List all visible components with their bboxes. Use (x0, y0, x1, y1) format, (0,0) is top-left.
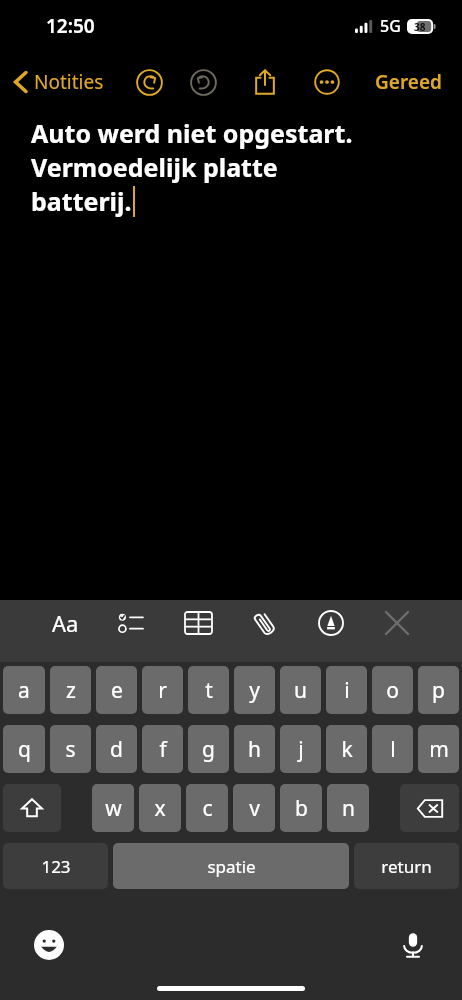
staticText: u (294, 676, 307, 705)
staticText: spatie (207, 855, 256, 878)
button[interactable]: s (50, 725, 91, 773)
staticText: f (159, 735, 167, 764)
staticText: Aa (52, 608, 79, 638)
button[interactable]: f (142, 725, 183, 773)
button[interactable]: q (3, 725, 45, 773)
button[interactable]: i (326, 666, 367, 714)
staticText: o (386, 676, 399, 705)
staticText: w (105, 794, 122, 823)
staticText: Auto werd niet opgestart. (31, 116, 353, 150)
button[interactable]: u (280, 666, 321, 714)
staticText: m (429, 735, 449, 764)
button[interactable]: a (3, 666, 45, 714)
button[interactable]: d (96, 725, 137, 773)
staticText: i (344, 676, 350, 705)
staticText: j (298, 735, 304, 764)
staticText: d (110, 735, 123, 764)
button[interactable]: z (50, 666, 91, 714)
staticText: h (248, 735, 261, 764)
button[interactable]: Text format (42, 600, 88, 646)
button[interactable]: o (372, 666, 413, 714)
button[interactable]: x (139, 784, 181, 832)
staticText: g (202, 735, 215, 764)
button[interactable]: Notities (10, 63, 108, 101)
button[interactable]: v (233, 784, 275, 832)
button[interactable]: Emoji keyboard (26, 922, 72, 968)
button[interactable]: Redo (181, 60, 225, 104)
staticText: s (65, 735, 76, 764)
staticText: 5G (380, 15, 401, 37)
staticText: c (202, 794, 213, 823)
staticText: p (432, 676, 445, 705)
button[interactable]: Backspace (400, 784, 459, 832)
button[interactable]: b (280, 784, 322, 832)
button[interactable]: More options (305, 60, 349, 104)
staticText: batterij. (31, 184, 132, 218)
button[interactable]: g (188, 725, 229, 773)
staticText: 12:50 (46, 13, 95, 39)
button[interactable]: Markup (308, 600, 354, 646)
button[interactable]: Share (243, 60, 287, 104)
button[interactable]: p (418, 666, 459, 714)
staticText: Gereed (375, 69, 442, 95)
button[interactable]: Gereed (369, 63, 448, 101)
staticText: Notities (34, 69, 104, 95)
button[interactable]: return (354, 843, 459, 889)
staticText: return (381, 855, 432, 878)
staticText: l (390, 735, 396, 764)
staticText: 123 (41, 855, 71, 878)
staticText: e (111, 676, 123, 705)
staticText: a (18, 676, 30, 705)
button[interactable]: Checklist (108, 600, 154, 646)
button[interactable]: Table (175, 600, 221, 646)
button[interactable]: e (96, 666, 137, 714)
staticText: k (341, 735, 353, 764)
button[interactable]: Dictate (390, 922, 436, 968)
staticText: z (66, 676, 76, 705)
staticText: q (18, 735, 31, 764)
staticText: Vermoedelijk platte (31, 150, 278, 184)
staticText: 38 (414, 20, 426, 34)
staticText: v (249, 794, 260, 823)
button[interactable]: Attach file (241, 600, 287, 646)
staticText: y (249, 676, 260, 705)
button[interactable]: j (280, 725, 321, 773)
button[interactable]: Close keyboard (374, 600, 420, 646)
staticText: n (342, 794, 355, 823)
button[interactable]: k (326, 725, 367, 773)
button[interactable]: c (186, 784, 228, 832)
staticText: r (158, 676, 167, 705)
button[interactable]: y (234, 666, 275, 714)
button[interactable]: r (142, 666, 183, 714)
button[interactable]: m (418, 725, 459, 773)
button[interactable]: Undo (127, 60, 171, 104)
button[interactable]: Shift (3, 784, 61, 832)
staticText: b (295, 794, 308, 823)
button[interactable]: t (188, 666, 229, 714)
button[interactable]: w (92, 784, 134, 832)
button[interactable]: 123 (3, 843, 108, 889)
staticText: t (205, 676, 213, 705)
button[interactable]: l (372, 725, 413, 773)
button[interactable]: n (327, 784, 369, 832)
staticText: x (154, 794, 166, 823)
button[interactable]: h (234, 725, 275, 773)
button[interactable]: spatie (113, 843, 349, 889)
